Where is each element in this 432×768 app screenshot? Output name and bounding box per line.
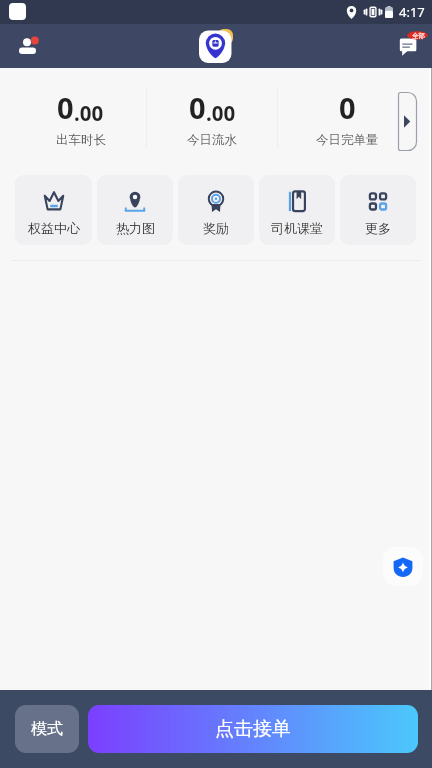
staticText: 0 (189, 88, 206, 127)
staticText: 出车时长 (56, 132, 106, 148)
button[interactable]: Messages (389, 27, 427, 65)
staticText: 模式 (31, 719, 63, 739)
staticText: 今日流水 (187, 132, 237, 148)
button[interactable]: 奖励 (178, 175, 254, 245)
button[interactable]: 0 (147, 68, 277, 168)
button[interactable]: 权益中心 (15, 175, 92, 245)
button[interactable]: App logo (199, 29, 233, 63)
staticText: 权益中心 (28, 220, 80, 236)
button[interactable]: Safety center (383, 547, 423, 586)
staticText: 司机课堂 (271, 220, 323, 236)
staticText: 点击接单 (215, 717, 291, 741)
staticText: .00 (206, 99, 236, 127)
button[interactable]: 模式 (15, 705, 79, 753)
staticText: 更多 (365, 220, 391, 236)
staticText: 奖励 (203, 220, 229, 236)
button[interactable]: 更多 (340, 175, 416, 245)
staticText: .00 (74, 99, 104, 127)
button[interactable]: Profile (10, 29, 44, 63)
button[interactable]: 0 (15, 68, 146, 168)
button[interactable]: 0 (278, 68, 416, 168)
staticText: 0 (57, 88, 74, 127)
staticText: 4:17 (399, 3, 425, 21)
button[interactable]: Expand stats (398, 92, 417, 151)
staticText: 全部 (412, 32, 425, 40)
staticText: 0 (339, 88, 356, 127)
button[interactable]: 司机课堂 (259, 175, 335, 245)
button[interactable]: 热力图 (97, 175, 173, 245)
button[interactable]: 点击接单 (88, 705, 418, 753)
staticText: 热力图 (116, 220, 155, 236)
staticText: 今日完单量 (316, 132, 379, 148)
